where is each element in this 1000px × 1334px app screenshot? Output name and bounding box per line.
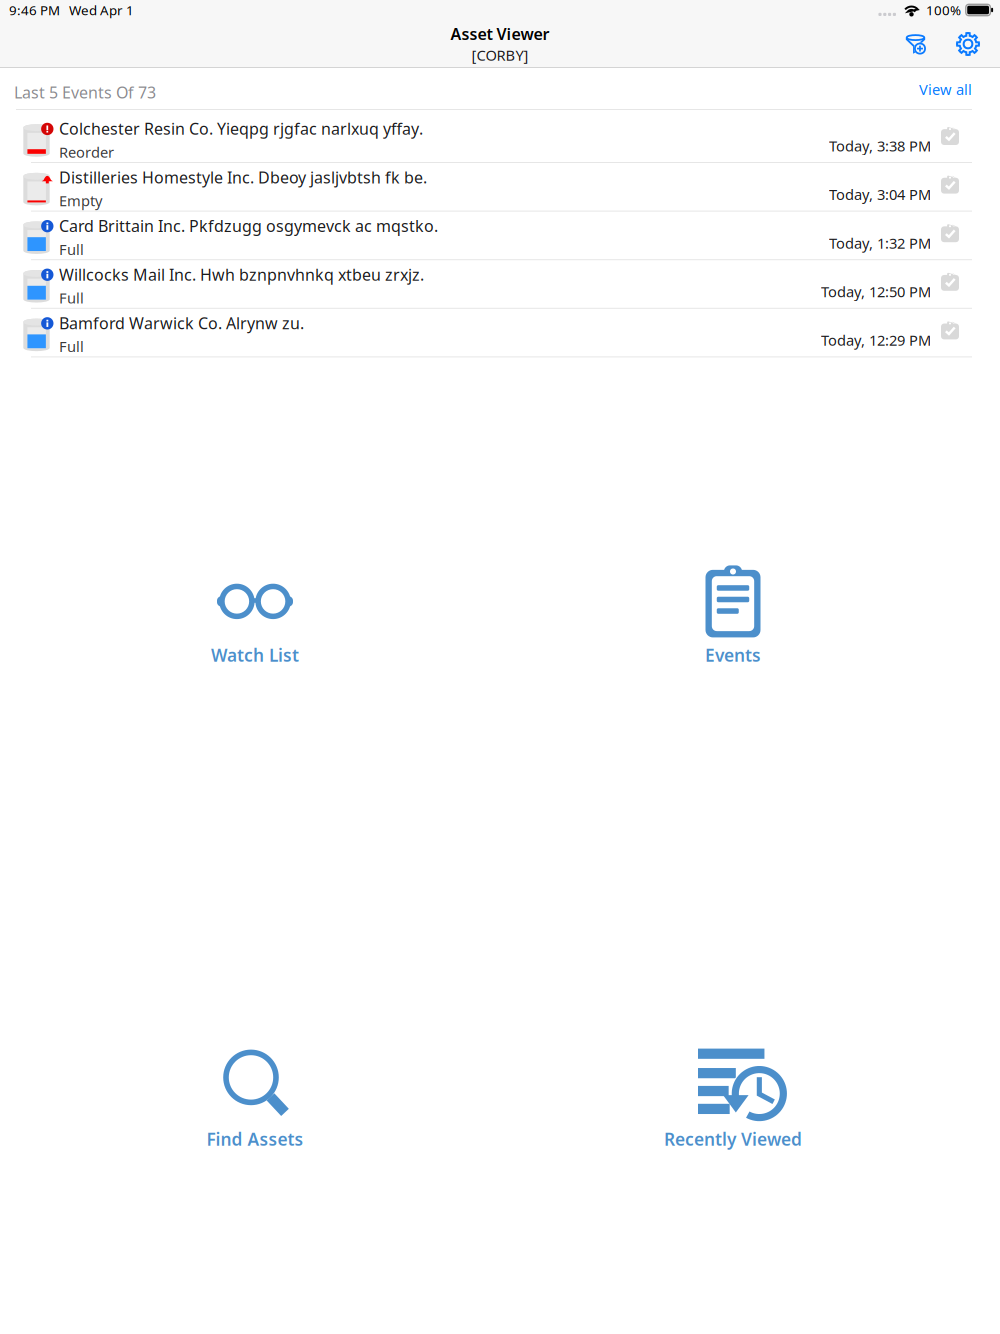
staticText: Empty (59, 191, 102, 210)
button[interactable]: View all (916, 75, 975, 103)
staticText: View all (919, 79, 972, 99)
staticText: Events (705, 643, 761, 666)
staticText: Today, 12:29 PM (821, 330, 931, 350)
staticText: Full (59, 288, 84, 307)
staticText: Last 5 Events Of 73 (14, 82, 156, 103)
staticText: Wed Apr 1 (69, 1, 134, 19)
staticText: Today, 3:38 PM (829, 136, 931, 155)
staticText: Reorder (59, 142, 114, 162)
button[interactable]: Recently Viewed (500, 1043, 1000, 1153)
button[interactable]: Distilleries Homestyle Inc. Dbeoy jasljv… (0, 163, 1000, 212)
staticText: Recently Viewed (664, 1127, 802, 1150)
staticText: Colchester Resin Co. Yieqpg rjgfac narlx… (59, 118, 423, 139)
staticText: Asset Viewer (450, 23, 549, 44)
button[interactable]: Find Assets (0, 1043, 500, 1153)
button[interactable]: Bamford Warwick Co. Alrynw zu. (0, 309, 1000, 357)
button[interactable]: Settings (949, 26, 987, 62)
staticText: Card Brittain Inc. Pkfdzugg osgymevck ac… (59, 215, 438, 236)
button[interactable]: Colchester Resin Co. Yieqpg rjgfac narlx… (0, 110, 1000, 163)
staticText: Watch List (211, 643, 299, 666)
button[interactable]: Card Brittain Inc. Pkfdzugg osgymevck ac… (0, 212, 1000, 260)
button[interactable]: Willcocks Mail Inc. Hwh bznpnvhnkq xtbeu… (0, 260, 1000, 309)
staticText: Today, 1:32 PM (829, 233, 931, 253)
staticText: Today, 12:50 PM (821, 282, 931, 301)
button[interactable]: Add filter (897, 26, 934, 61)
staticText: Full (59, 337, 84, 356)
staticText: Today, 3:04 PM (829, 185, 931, 204)
staticText: Find Assets (206, 1127, 303, 1150)
staticText: [CORBY] (471, 45, 528, 65)
button[interactable]: Events (500, 559, 1000, 669)
button[interactable]: Watch List (0, 559, 500, 669)
staticText: Bamford Warwick Co. Alrynw zu. (59, 312, 304, 334)
staticText: 100% (926, 1, 961, 19)
staticText: 9:46 PM (9, 1, 60, 19)
staticText: Willcocks Mail Inc. Hwh bznpnvhnkq xtbeu… (59, 264, 424, 285)
staticText: Distilleries Homestyle Inc. Dbeoy jasljv… (59, 167, 427, 188)
staticText: Full (59, 239, 84, 259)
